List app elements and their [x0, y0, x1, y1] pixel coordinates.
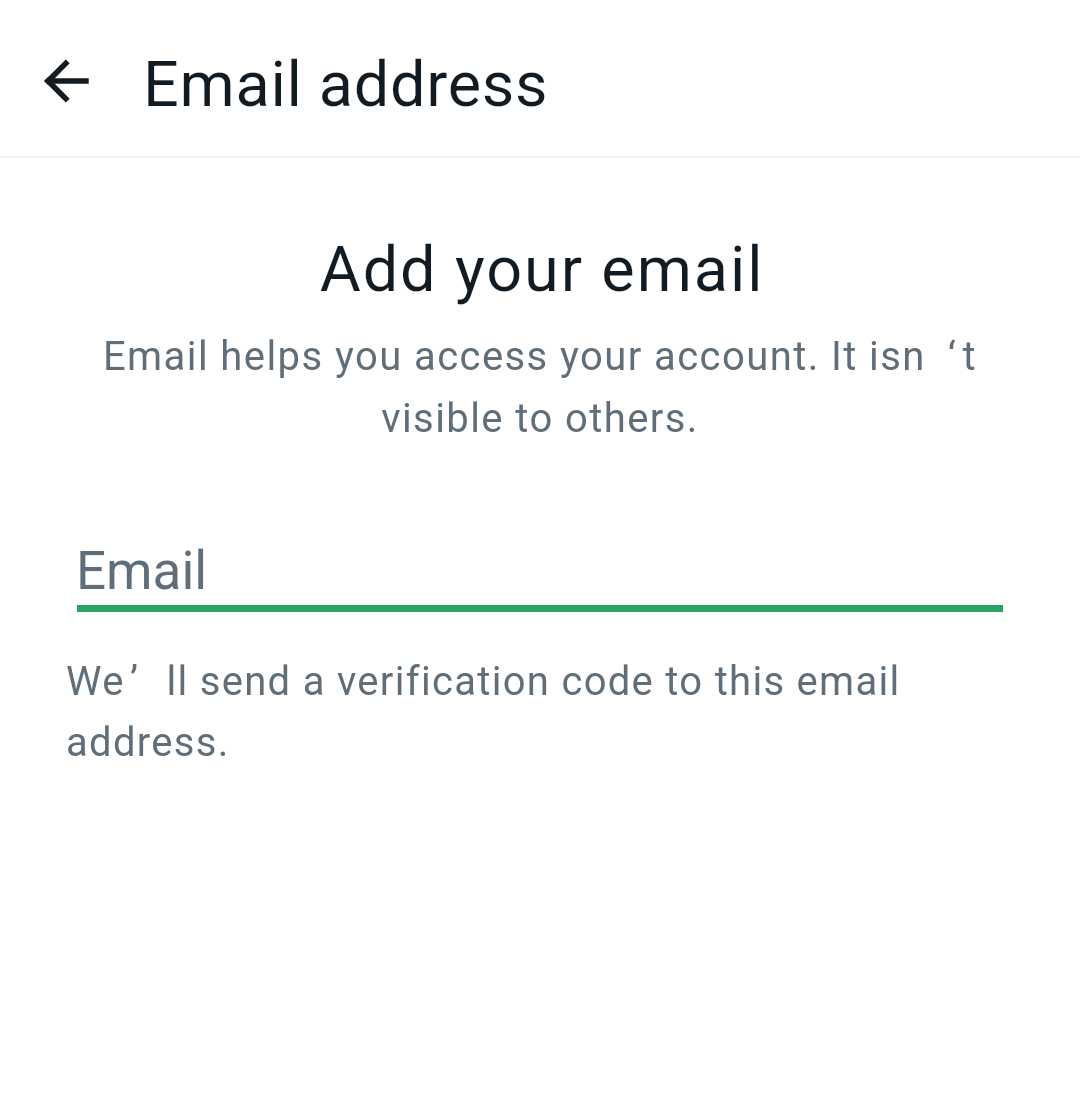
staticText: Email address: [143, 48, 549, 122]
staticText: Email: [76, 540, 208, 602]
staticText: Email helps you access your account. It …: [80, 333, 1000, 441]
staticText: Add your email: [2, 233, 1080, 307]
staticText: We ’ ll send a verification code to this…: [66, 658, 956, 766]
button[interactable]: Email: [77, 520, 1003, 612]
button[interactable]: Navigate up: [31, 45, 103, 117]
